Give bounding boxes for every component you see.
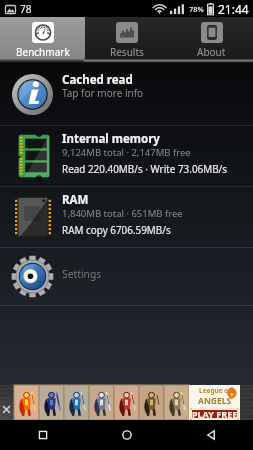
button[interactable]: Benchmark — [0, 17, 85, 59]
button[interactable]: League of — [14, 385, 240, 420]
staticText: Results — [110, 45, 144, 59]
button[interactable]: Results — [85, 17, 169, 59]
staticText: PLAY FREE — [192, 408, 238, 420]
button[interactable]: Cached read — [0, 63, 253, 125]
staticText: 78 — [20, 2, 32, 16]
staticText: Internal memory — [62, 131, 160, 147]
staticText: 21:44 — [218, 1, 249, 17]
button[interactable]: Internal memory — [0, 126, 253, 186]
staticText: About — [197, 45, 226, 59]
staticText: 9,124MB total · 2,147MB free — [62, 146, 191, 159]
button[interactable]: Home — [85, 420, 169, 450]
button[interactable]: Recents — [0, 420, 85, 450]
staticText: Settings — [62, 267, 102, 281]
button[interactable]: RAM — [0, 187, 253, 247]
staticText: Read 220.40MB/s · Write 73.06MB/s — [62, 162, 228, 175]
staticText: ANGELS — [198, 395, 232, 407]
staticText: Tap for more info — [62, 86, 144, 100]
staticText: League of — [199, 386, 231, 395]
button[interactable]: Back — [169, 420, 253, 450]
staticText: RAM — [62, 192, 89, 208]
staticText: Cached read — [62, 72, 133, 88]
staticText: 1,840MB total · 651MB free — [62, 207, 183, 220]
button[interactable]: Close ad — [0, 385, 13, 420]
staticText: 78% — [189, 4, 204, 14]
button[interactable]: About — [169, 17, 253, 59]
staticText: Benchmark — [16, 45, 70, 59]
staticText: RAM copy 6706.59MB/s — [62, 223, 171, 236]
button[interactable]: Settings — [0, 248, 253, 305]
